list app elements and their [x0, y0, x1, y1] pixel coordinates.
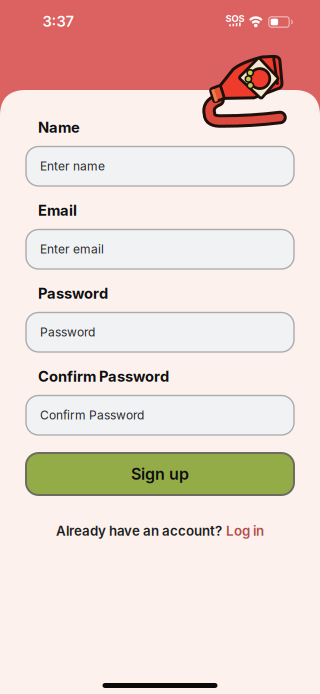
staticText: Confirm Password: [38, 368, 169, 385]
staticText: 3:37: [42, 13, 73, 30]
button[interactable]: Log in: [226, 523, 264, 539]
button[interactable]: Password: [26, 312, 294, 352]
staticText: SOS: [225, 13, 244, 24]
staticText: Confirm Password: [40, 408, 144, 422]
staticText: Name: [38, 119, 80, 136]
staticText: Password: [40, 325, 95, 339]
staticText: Sign up: [131, 465, 189, 483]
button[interactable]: Enter name: [26, 146, 294, 186]
button[interactable]: Confirm Password: [26, 395, 294, 435]
button[interactable]: Enter email: [26, 229, 294, 269]
staticText: Enter name: [40, 159, 105, 173]
staticText: Enter email: [40, 242, 104, 256]
staticText: Email: [38, 202, 77, 219]
button[interactable]: Sign up: [26, 453, 294, 495]
staticText: Password: [38, 285, 108, 302]
staticText: Already have an account?: [56, 523, 222, 539]
staticText: Log in: [226, 523, 264, 539]
